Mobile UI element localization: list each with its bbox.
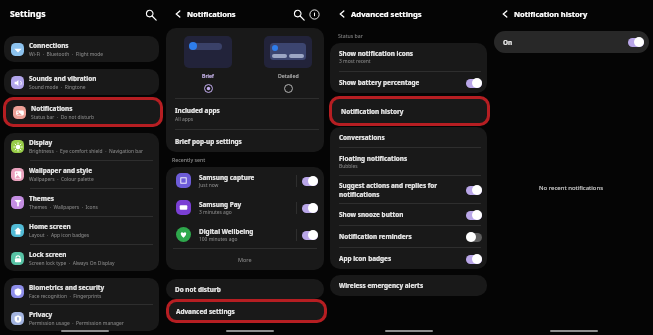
staticText: Wi-Fi · Bluetooth · Flight mode <box>29 51 104 58</box>
button[interactable]: Search <box>291 7 305 21</box>
staticText: Settings <box>10 8 46 20</box>
staticText: Conversations <box>339 133 385 142</box>
staticText: Themes · Wallpapers · Icons <box>29 204 98 211</box>
staticText: Recently sent <box>172 156 206 163</box>
button[interactable]: On <box>302 230 318 240</box>
button[interactable]: Conversations <box>330 127 487 147</box>
staticText: Status bar <box>338 32 363 39</box>
staticText: 100 minutes ago <box>199 236 238 243</box>
staticText: All apps <box>175 116 194 123</box>
staticText: Just now <box>199 182 219 189</box>
button[interactable]: Privacy <box>4 305 159 331</box>
button[interactable]: Floating notifications <box>330 148 487 175</box>
staticText: Show snooze button <box>339 210 404 219</box>
staticText: Samsung Pay <box>199 200 242 209</box>
staticText: Advanced settings <box>176 307 235 316</box>
staticText: Show notification icons <box>339 49 414 58</box>
button[interactable]: Show battery percentage <box>330 72 487 93</box>
button[interactable]: Included apps <box>166 99 324 129</box>
button[interactable]: Search <box>143 7 157 21</box>
staticText: 3 most recent <box>339 58 371 65</box>
staticText: Face recognition · Fingerprints <box>29 293 102 300</box>
button[interactable]: Home screen <box>4 217 159 244</box>
staticText: Wallpaper and style <box>29 166 92 175</box>
button[interactable]: Digital Wellbeing <box>166 221 324 248</box>
button[interactable]: On <box>466 78 482 88</box>
button[interactable]: On <box>466 185 482 195</box>
staticText: Notifications <box>31 104 73 113</box>
button[interactable]: Notification history <box>332 99 487 123</box>
staticText: Connections <box>29 41 69 50</box>
button[interactable]: Themes <box>4 189 159 216</box>
staticText: Themes <box>29 194 54 203</box>
button[interactable]: Off <box>466 232 482 242</box>
button[interactable]: Lock screen <box>4 245 159 271</box>
staticText: Sounds and vibration <box>29 74 97 83</box>
staticText: Advanced settings <box>351 9 422 19</box>
staticText: Brightness · Eye comfort shield · Naviga… <box>29 148 144 155</box>
staticText: Digital Wellbeing <box>199 227 254 236</box>
button[interactable]: Wireless emergency alerts <box>330 275 487 296</box>
button[interactable]: Connections <box>4 36 159 62</box>
staticText: Detailed <box>278 72 299 79</box>
staticText: Show battery percentage <box>339 78 420 87</box>
button[interactable]: Navigate up <box>498 7 512 21</box>
button[interactable]: Brief <box>184 36 232 93</box>
button[interactable]: Show notification icons <box>330 43 487 71</box>
staticText: Notifications <box>187 9 236 19</box>
button[interactable]: On <box>494 31 649 53</box>
staticText: Bubbles <box>339 163 358 170</box>
button[interactable]: On <box>628 37 644 47</box>
staticText: App icon badges <box>339 254 392 263</box>
staticText: No recent notifications <box>539 184 604 192</box>
staticText: Layout · App icon badges <box>29 232 90 239</box>
staticText: Privacy <box>29 310 53 319</box>
staticText: Lock screen <box>29 250 67 259</box>
button[interactable]: Samsung Pay <box>166 194 324 221</box>
button[interactable]: Show snooze button <box>330 204 487 225</box>
button[interactable]: Advanced settings <box>169 302 324 320</box>
staticText: Brief <box>202 72 214 79</box>
button[interactable]: Navigate up <box>335 7 349 21</box>
staticText: Sound mode · Ringtone <box>29 84 86 91</box>
button[interactable]: Navigate up <box>171 7 185 21</box>
staticText: Wallpapers · Colour palette <box>29 176 94 183</box>
staticText: Brief pop-up settings <box>175 137 242 146</box>
button[interactable]: Biometrics and security <box>4 278 159 304</box>
staticText: Permission usage · Permission manager <box>29 320 124 327</box>
button[interactable]: On <box>466 210 482 220</box>
button[interactable]: Detailed <box>264 36 312 93</box>
staticText: Home screen <box>29 222 71 231</box>
button[interactable]: Brief pop-up settings <box>166 130 324 152</box>
staticText: More <box>238 256 252 263</box>
staticText: Display <box>29 138 53 147</box>
staticText: Notification reminders <box>339 232 412 241</box>
staticText: Suggest actions and replies for notifica… <box>339 181 462 199</box>
button[interactable]: Notifications <box>6 100 160 124</box>
staticText: Notification history <box>514 9 588 19</box>
staticText: Floating notifications <box>339 154 408 163</box>
button[interactable]: Help <box>307 7 321 21</box>
staticText: Screen lock type · Always On Display <box>29 260 115 267</box>
button[interactable]: Notification reminders <box>330 226 487 247</box>
button[interactable]: Suggest actions and replies for notifica… <box>330 176 487 203</box>
button[interactable]: More <box>166 249 324 270</box>
staticText: On <box>503 38 628 47</box>
staticText: Notification history <box>341 107 404 116</box>
staticText: Biometrics and security <box>29 283 105 292</box>
staticText: Samsung capture <box>199 173 255 182</box>
button[interactable]: Wallpaper and style <box>4 161 159 188</box>
button[interactable]: Samsung capture <box>166 167 324 194</box>
button[interactable]: App icon badges <box>330 248 487 269</box>
staticText: Do not disturb <box>175 285 221 294</box>
staticText: Included apps <box>175 106 220 115</box>
staticText: Status bar · Do not disturb <box>31 114 95 121</box>
staticText: 3 minutes ago <box>199 209 232 216</box>
button[interactable]: Display <box>4 133 159 160</box>
button[interactable]: On <box>302 176 318 186</box>
button[interactable]: Do not disturb <box>166 279 324 299</box>
button[interactable]: On <box>302 203 318 213</box>
button[interactable]: Sounds and vibration <box>4 69 159 95</box>
button[interactable]: On <box>466 254 482 264</box>
staticText: Wireless emergency alerts <box>339 281 424 290</box>
